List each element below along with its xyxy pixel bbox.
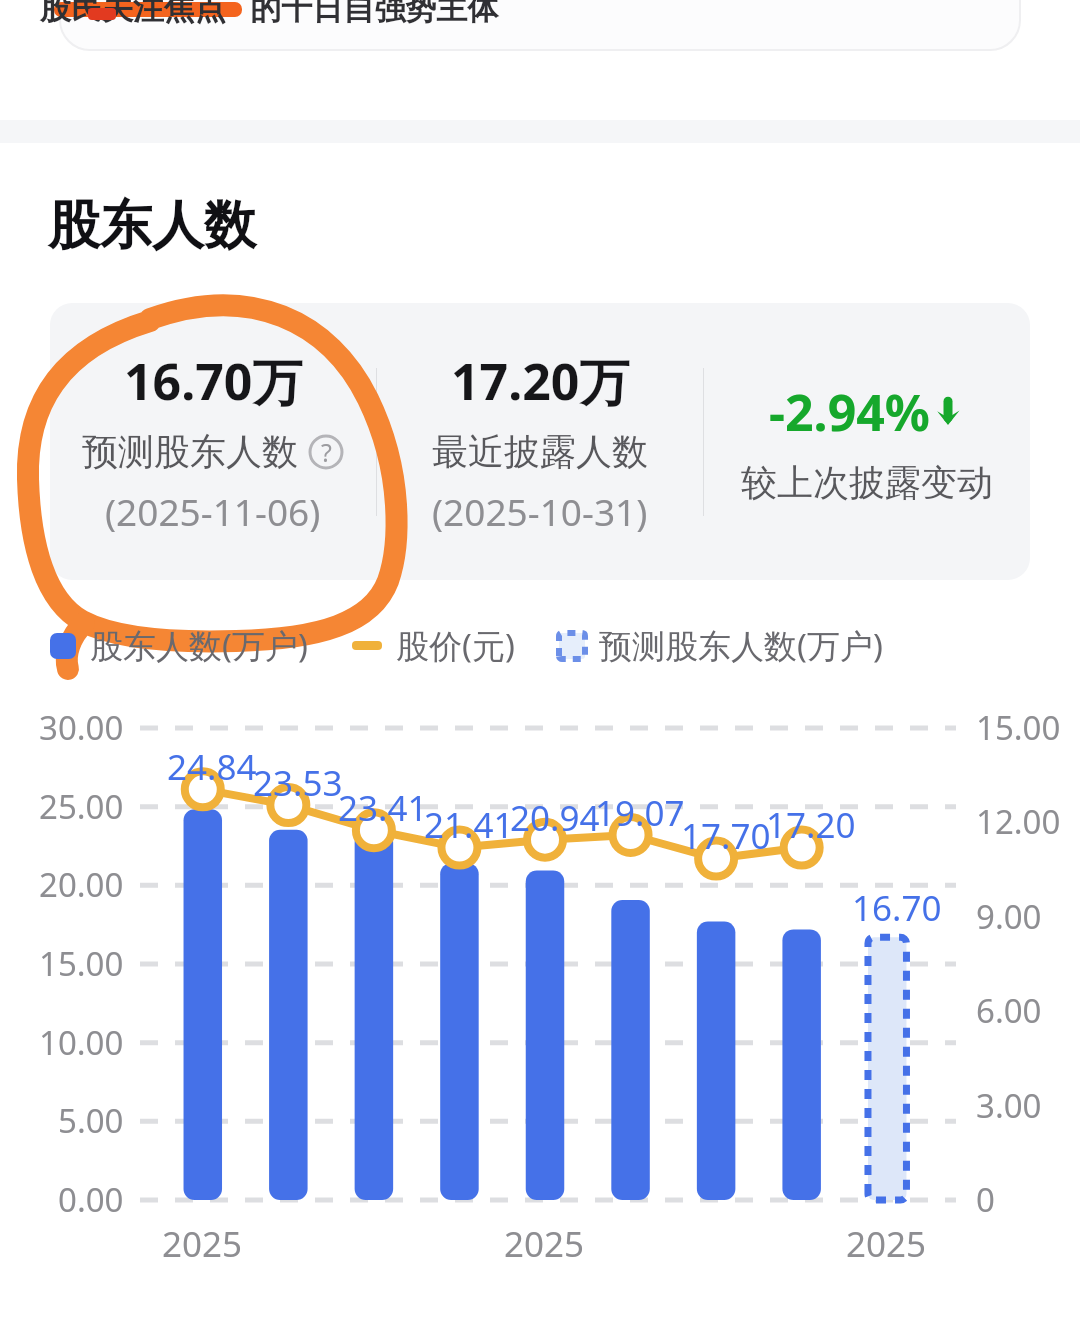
button[interactable]: 说明 bbox=[308, 434, 344, 470]
staticText: 5.00 bbox=[58, 1098, 124, 1143]
staticText: ? bbox=[321, 435, 332, 469]
staticText: 股民关注焦点 的十日自强势主体 bbox=[40, 0, 499, 28]
staticText: 20.00 bbox=[39, 862, 124, 907]
staticText: 10.00 bbox=[39, 1020, 124, 1065]
staticText: 股东人数 bbox=[48, 193, 256, 259]
staticText: 21.41 bbox=[424, 801, 514, 849]
button[interactable]: 17.20万 bbox=[377, 347, 703, 536]
staticText: 0.00 bbox=[58, 1177, 124, 1222]
staticText: 6.00 bbox=[976, 988, 1042, 1033]
staticText: 17.20 bbox=[766, 801, 856, 849]
staticText: 0 bbox=[976, 1177, 995, 1222]
staticText: 股东人数(万户) bbox=[90, 623, 308, 668]
staticText: 较上次披露变动 bbox=[741, 460, 993, 505]
staticText: 3.00 bbox=[976, 1083, 1042, 1128]
staticText: 30.00 bbox=[39, 705, 124, 750]
staticText: 预测股东人数 bbox=[82, 429, 298, 474]
staticText: -2.94% bbox=[769, 378, 930, 446]
staticText: (2025-10-31) bbox=[432, 486, 648, 536]
staticText: 9.00 bbox=[976, 894, 1042, 939]
staticText: 预测股东人数(万户) bbox=[599, 623, 883, 668]
staticText: 15.00 bbox=[976, 705, 1061, 750]
staticText: 2025 bbox=[846, 1220, 927, 1268]
staticText: 2025 bbox=[162, 1220, 243, 1268]
button[interactable]: -2.94% bbox=[704, 378, 1030, 505]
staticText: 16.70 bbox=[852, 884, 942, 932]
staticText: 股价(元) bbox=[396, 623, 515, 668]
staticText: 最近披露人数 bbox=[432, 429, 648, 474]
button[interactable]: 16.70万 bbox=[50, 347, 376, 536]
staticText: 24.84 bbox=[167, 743, 257, 791]
staticText: 23.53 bbox=[253, 759, 343, 807]
staticText: 16.70万 bbox=[124, 347, 303, 415]
staticText: (2025-11-06) bbox=[105, 486, 321, 536]
staticText: 15.00 bbox=[39, 941, 124, 986]
staticText: 17.20万 bbox=[451, 347, 630, 415]
staticText: 2025 bbox=[504, 1220, 585, 1268]
staticText: 23.41 bbox=[338, 784, 428, 832]
staticText: 12.00 bbox=[976, 799, 1061, 844]
staticText: 17.70 bbox=[681, 812, 771, 860]
staticText: 19.07 bbox=[595, 789, 685, 837]
staticText: 20.94 bbox=[510, 794, 600, 842]
staticText: 25.00 bbox=[39, 784, 124, 829]
